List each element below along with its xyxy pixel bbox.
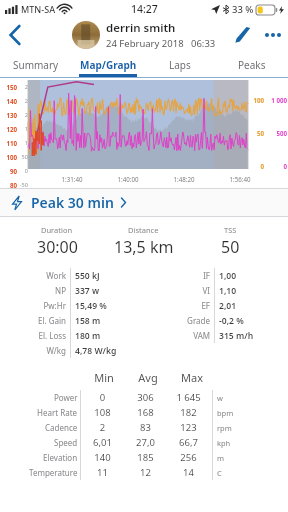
staticText: Peaks (238, 58, 266, 72)
staticText: 1 645 (167, 391, 210, 404)
staticText: W/kg (0, 345, 66, 356)
staticText: 2,01 (219, 300, 237, 312)
button[interactable]: Laps (144, 52, 216, 78)
button[interactable]: Map/Graph (72, 52, 144, 78)
staticText: 1 (17, 139, 28, 147)
staticText: 550 kJ (75, 270, 100, 282)
staticText: 1,00 (219, 270, 237, 282)
button[interactable]: More options (258, 20, 288, 50)
staticText: 0 (250, 162, 264, 170)
staticText: 100 (2, 153, 17, 161)
staticText: 14:27 (131, 2, 158, 16)
staticText: Avg (126, 370, 170, 385)
staticText: 180 m (75, 330, 101, 342)
staticText: 1:31:40 (48, 175, 96, 183)
staticText: 27,0 (124, 436, 167, 449)
staticText: Max (170, 370, 214, 385)
staticText: 12 (124, 466, 167, 479)
staticText: 1 000 (266, 96, 287, 104)
staticText: w (217, 393, 223, 403)
staticText: Power (54, 392, 78, 403)
staticText: kph (217, 438, 231, 448)
staticText: 110 (2, 139, 17, 147)
staticText: 256 (167, 451, 210, 464)
staticText: 11 (81, 466, 124, 479)
staticText: derrin smith (106, 20, 176, 36)
staticText: 1,10 (219, 285, 237, 297)
staticText: 2 (17, 97, 28, 105)
staticText: 2 (17, 83, 28, 91)
button[interactable]: Summary (0, 52, 72, 78)
staticText: 306 (124, 391, 167, 404)
staticText: Speed (54, 437, 78, 448)
staticText: Duration (41, 225, 73, 235)
staticText: VI (144, 285, 210, 296)
staticText: 108 (81, 406, 124, 419)
staticText: Min (82, 370, 126, 385)
staticText: 182 (167, 406, 210, 419)
staticText: El. Gain (0, 315, 66, 326)
staticText: 0 (81, 391, 124, 404)
staticText: Peak 30 min (31, 193, 114, 212)
staticText: Summary (13, 58, 59, 72)
staticText: 50 (17, 153, 28, 161)
staticText: 1:48:20 (160, 175, 208, 183)
staticText: 140 (2, 97, 17, 105)
staticText: 6,01 (81, 436, 124, 449)
staticText: 123 (167, 421, 210, 434)
staticText: bpm (217, 408, 234, 418)
staticText: 33 % (232, 3, 254, 16)
staticText: 4,78 W/kg (75, 345, 117, 357)
staticText: 2 (81, 421, 124, 434)
staticText: Heart Rate (37, 407, 78, 418)
staticText: 140 (81, 451, 124, 464)
staticText: MTN-SA (21, 3, 56, 15)
staticText: rpm (217, 423, 232, 433)
staticText: 337 w (75, 285, 100, 297)
staticText: 168 (124, 406, 167, 419)
staticText: 1:40:00 (104, 175, 152, 183)
staticText: VAM (144, 330, 210, 341)
staticText: 130 (2, 111, 17, 119)
staticText: 100 (250, 96, 264, 104)
staticText: Elevation (43, 452, 78, 463)
staticText: 90 (2, 167, 17, 175)
staticText: 50 (250, 129, 264, 137)
staticText: 14 (167, 466, 210, 479)
staticText: Grade (144, 315, 210, 326)
staticText: C (217, 468, 222, 478)
staticText: NP (0, 285, 66, 296)
staticText: Work (0, 270, 66, 281)
button[interactable]: Back (0, 20, 30, 50)
staticText: -50 (17, 181, 28, 188)
staticText: TSS (224, 225, 237, 235)
staticText: 13,5 km (114, 236, 174, 258)
staticText: 120 (2, 125, 17, 133)
staticText: IF (144, 270, 210, 281)
button[interactable]: Peak 30 min (0, 189, 288, 216)
staticText: 24 February 2018 (106, 37, 184, 50)
staticText: Cadence (45, 422, 78, 433)
staticText: 185 (124, 451, 167, 464)
staticText: 500 (266, 129, 287, 137)
staticText: 83 (124, 421, 167, 434)
button[interactable]: Peaks (216, 52, 288, 78)
staticText: Laps (169, 58, 191, 72)
button[interactable]: Edit (228, 20, 258, 50)
staticText: 1:56:40 (216, 175, 264, 183)
staticText: 150 (2, 83, 17, 91)
staticText: Map/Graph (80, 58, 137, 72)
staticText: 315 m/h (219, 330, 254, 342)
staticText: EF (144, 300, 210, 311)
staticText: Distance (128, 225, 159, 235)
staticText: 0 (17, 167, 28, 175)
staticText: m (217, 453, 225, 463)
staticText: 06:33 (191, 37, 216, 50)
staticText: 66,7 (167, 436, 210, 449)
staticText: 50 (221, 236, 240, 258)
staticText: 1 (17, 125, 28, 133)
staticText: 0 (266, 162, 287, 170)
staticText: Temperature (29, 467, 78, 478)
staticText: 2 (17, 111, 28, 119)
staticText: 158 m (75, 315, 101, 327)
